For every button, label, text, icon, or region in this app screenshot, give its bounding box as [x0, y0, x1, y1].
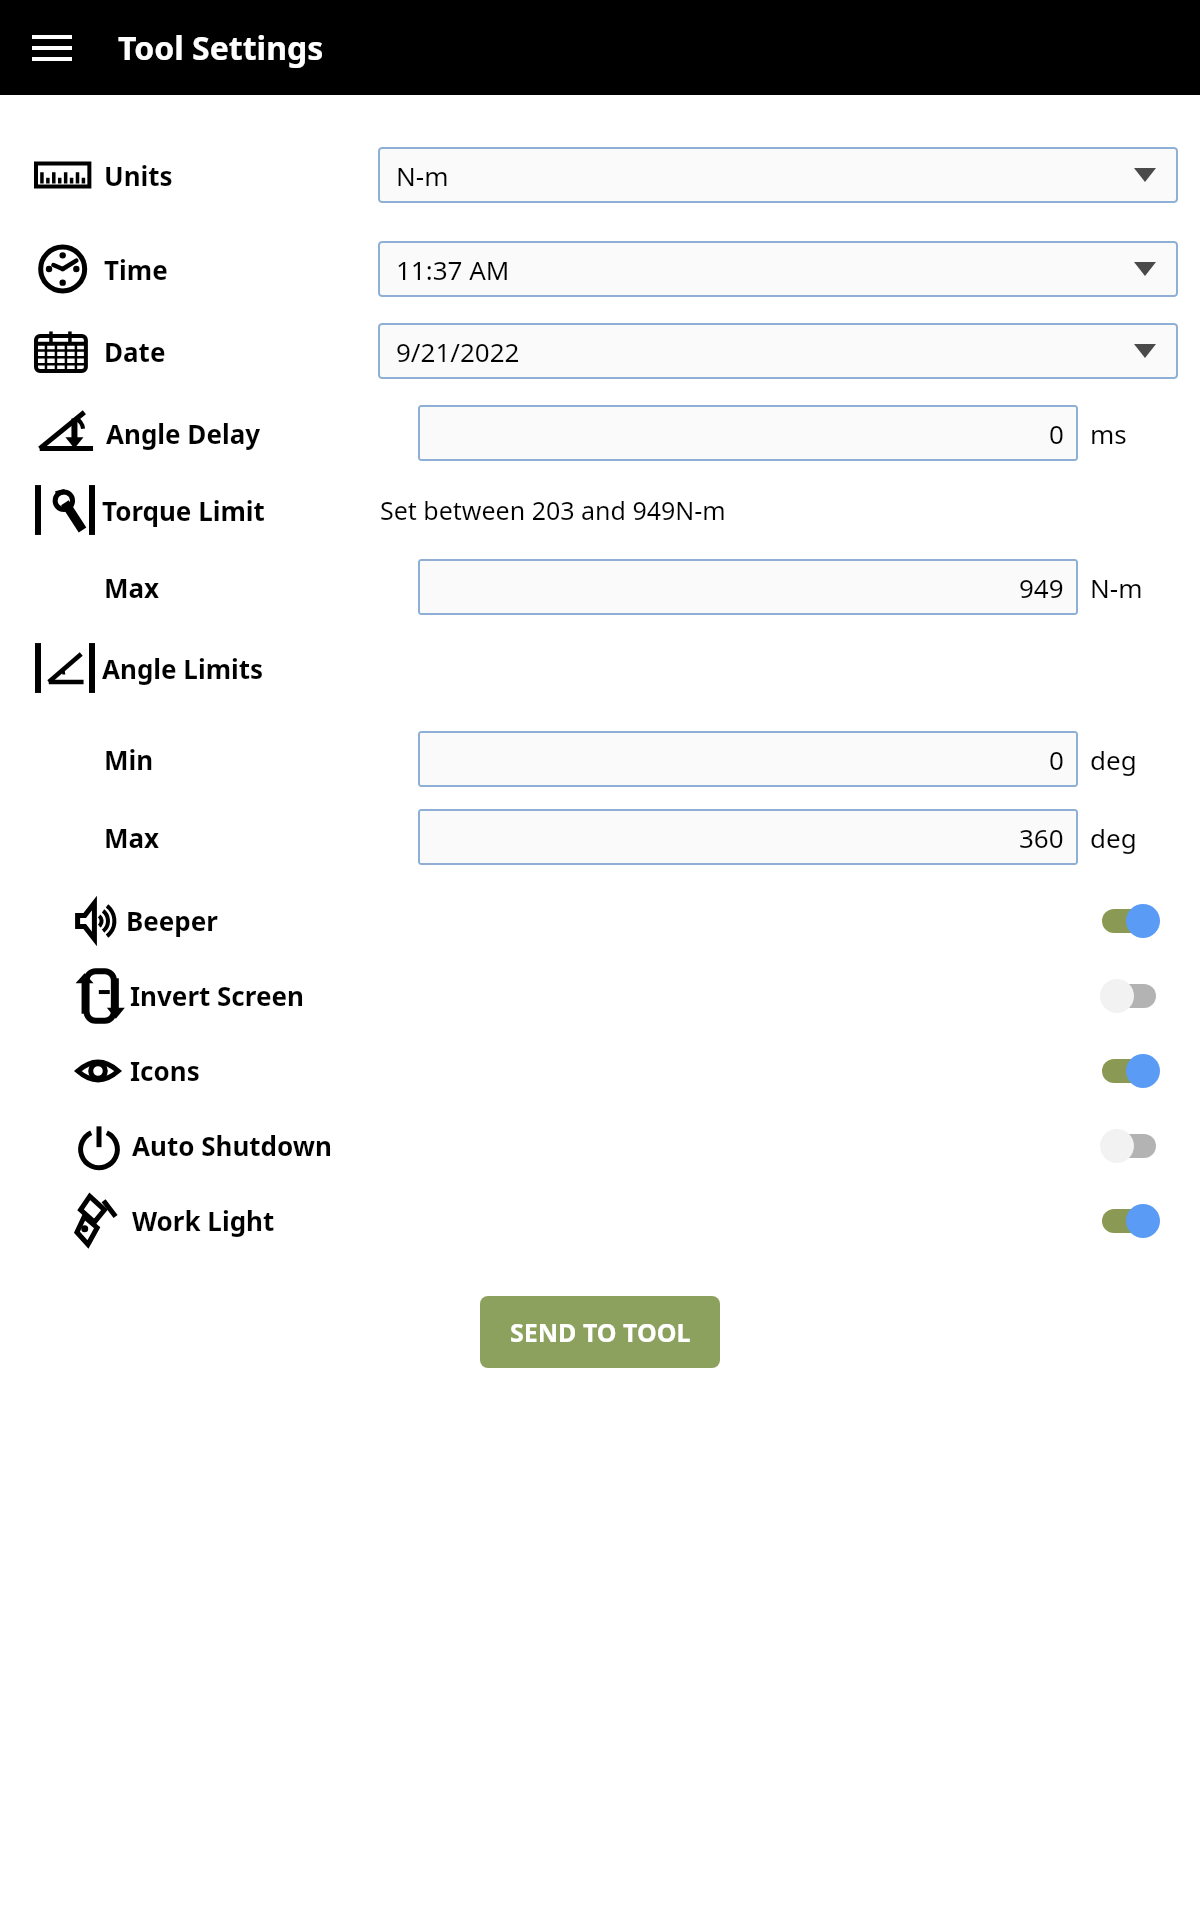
button[interactable]: 0	[418, 405, 1078, 461]
button[interactable]: Icons toggle	[1100, 1051, 1174, 1091]
staticText: Icons	[130, 1053, 200, 1088]
button[interactable]: 11:37 AM	[378, 241, 1178, 297]
staticText: Date	[104, 334, 166, 369]
staticText: 949	[1019, 570, 1064, 605]
button[interactable]: 949	[418, 559, 1078, 615]
staticText: Max	[104, 570, 160, 605]
button[interactable]: Work Light	[0, 1183, 1200, 1258]
button[interactable]: Invert Screen toggle	[1100, 976, 1174, 1016]
staticText: Min	[104, 742, 154, 777]
staticText: Auto Shutdown	[132, 1128, 332, 1163]
staticText: 11:37 AM	[396, 252, 510, 287]
button[interactable]: Beeper	[0, 883, 1200, 958]
staticText: 9/21/2022	[396, 334, 520, 369]
button[interactable]: Beeper toggle	[1100, 901, 1174, 941]
staticText: 0	[1049, 742, 1064, 777]
staticText: Time	[104, 252, 168, 287]
staticText: Beeper	[126, 903, 218, 938]
button[interactable]: 9/21/2022	[378, 323, 1178, 379]
button[interactable]: Auto Shutdown toggle	[1100, 1126, 1174, 1166]
button[interactable]: Open navigation menu	[24, 20, 80, 76]
staticText: Angle Delay	[106, 416, 261, 451]
button[interactable]: N-m	[378, 147, 1178, 203]
button[interactable]: Auto Shutdown	[0, 1108, 1200, 1183]
staticText: deg	[1090, 742, 1137, 777]
staticText: SEND TO TOOL	[510, 1315, 691, 1349]
staticText: Work Light	[132, 1203, 275, 1238]
staticText: ms	[1090, 416, 1127, 451]
staticText: 360	[1019, 820, 1064, 855]
button[interactable]: SEND TO TOOL	[480, 1296, 720, 1368]
staticText: 0	[1049, 416, 1064, 451]
button[interactable]: 0	[418, 731, 1078, 787]
button[interactable]: 360	[418, 809, 1078, 865]
staticText: N-m	[396, 158, 449, 193]
button[interactable]: Work Light toggle	[1100, 1201, 1174, 1241]
button[interactable]: Icons	[0, 1033, 1200, 1108]
staticText: Angle Limits	[102, 651, 264, 686]
staticText: Units	[104, 158, 173, 193]
staticText: Max	[104, 820, 160, 855]
button[interactable]: Invert Screen	[0, 958, 1200, 1033]
staticText: Torque Limit	[102, 493, 265, 528]
staticText: Invert Screen	[130, 978, 304, 1013]
staticText: Tool Settings	[118, 26, 324, 70]
staticText: Set between 203 and 949N-m	[380, 493, 726, 527]
staticText: deg	[1090, 820, 1137, 855]
staticText: N-m	[1090, 570, 1143, 605]
